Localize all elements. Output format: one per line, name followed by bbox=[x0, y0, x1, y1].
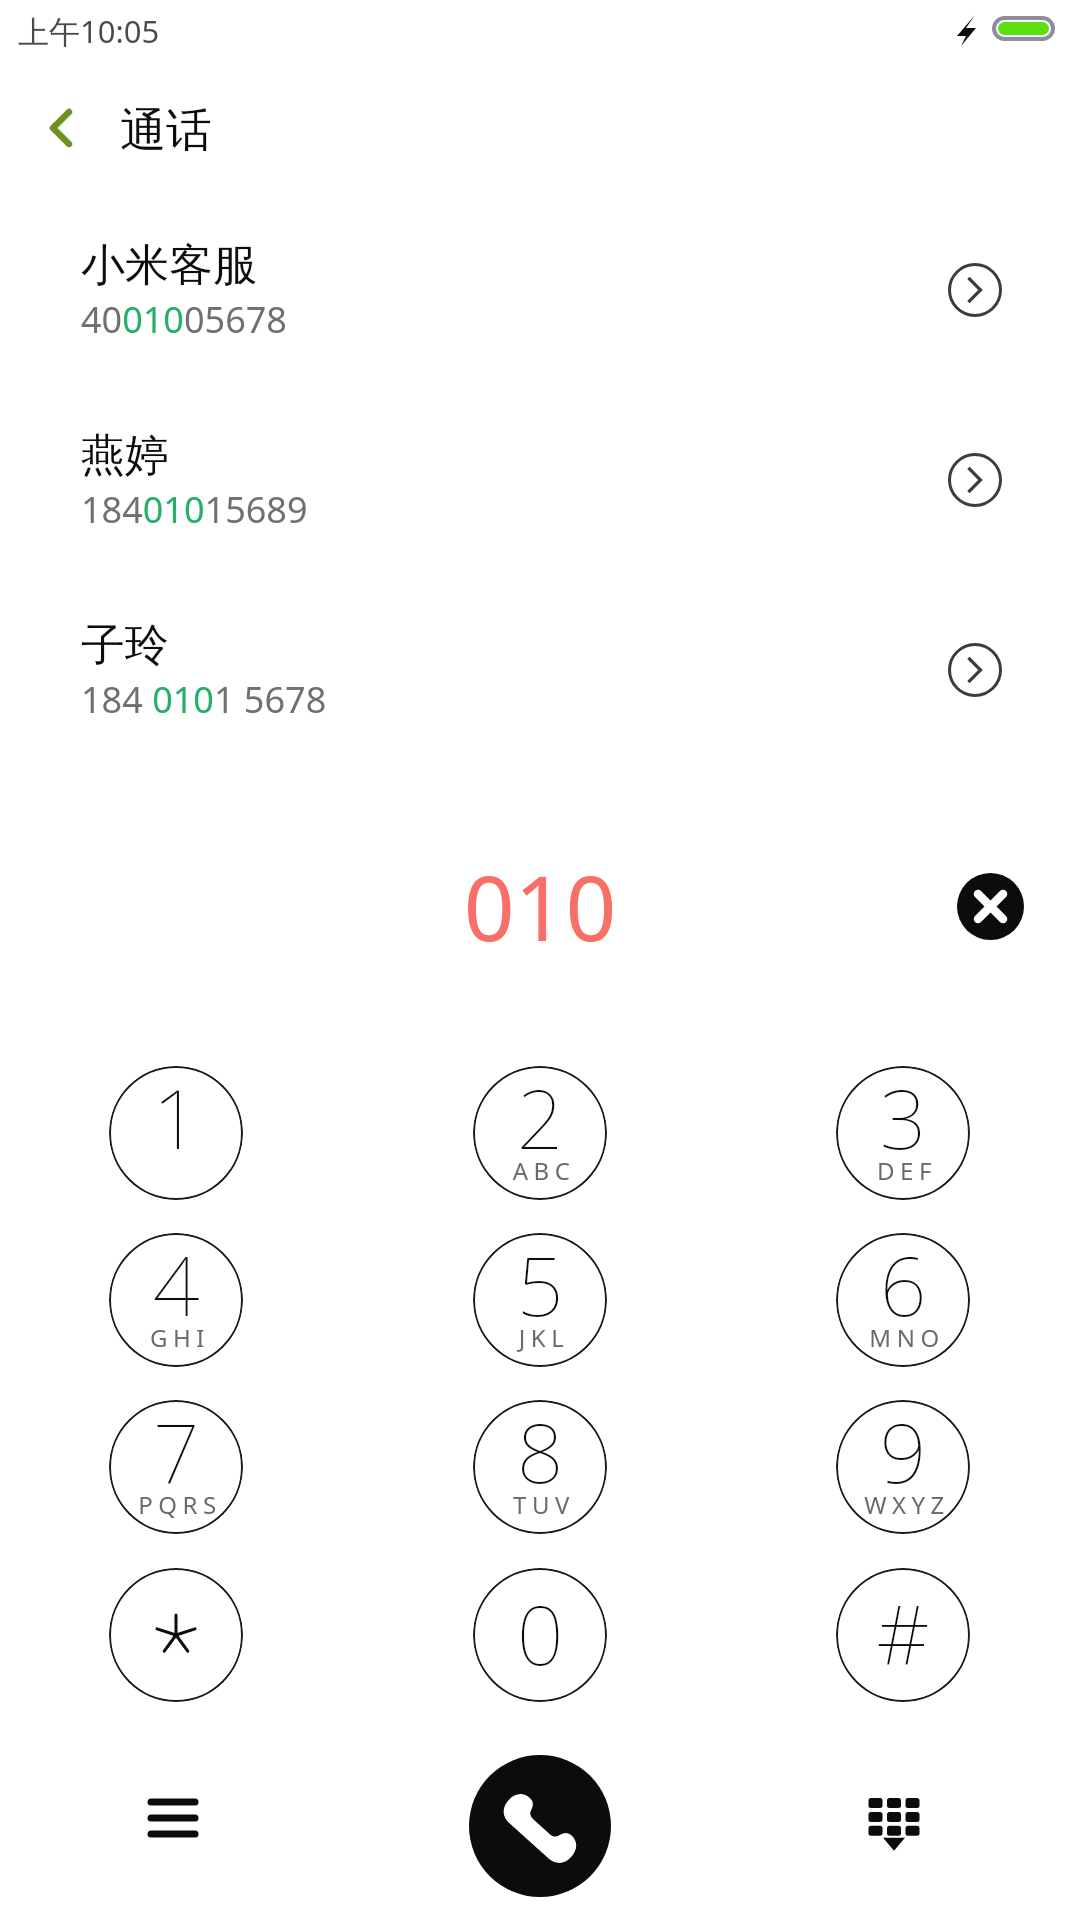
button[interactable]: Dial 0 bbox=[473, 1568, 607, 1702]
staticText: 4 bbox=[109, 1233, 243, 1340]
staticText: 通话 bbox=[120, 102, 212, 160]
button[interactable]: Call log bbox=[113, 1758, 233, 1878]
button[interactable]: Dialpad bbox=[834, 1760, 954, 1880]
staticText: 3 bbox=[836, 1066, 970, 1173]
staticText: 上午10:05 bbox=[18, 10, 160, 52]
staticText: 子玲 bbox=[81, 618, 169, 673]
staticText: ABC bbox=[477, 1154, 607, 1187]
button[interactable]: Open contact bbox=[948, 453, 1002, 507]
staticText: # bbox=[836, 1577, 970, 1689]
staticText: 1 bbox=[109, 1066, 243, 1173]
button[interactable]: Open contact bbox=[948, 263, 1002, 317]
button[interactable]: Clear bbox=[957, 873, 1024, 940]
button[interactable]: 子玲 bbox=[0, 595, 1080, 755]
button[interactable]: Dial 4 bbox=[109, 1233, 243, 1367]
staticText: TUV bbox=[477, 1488, 607, 1521]
button[interactable]: Dial 9 bbox=[836, 1400, 970, 1534]
staticText: 2 bbox=[473, 1066, 607, 1173]
staticText: 010 bbox=[0, 846, 1080, 967]
staticText: 6 bbox=[836, 1233, 970, 1340]
staticText: 0 bbox=[473, 1577, 607, 1689]
staticText: 9 bbox=[836, 1400, 970, 1507]
staticText: WXYZ bbox=[840, 1488, 970, 1521]
button[interactable]: Dial 7 bbox=[109, 1400, 243, 1534]
button[interactable]: Call bbox=[469, 1755, 611, 1897]
button[interactable]: Dial 8 bbox=[473, 1400, 607, 1534]
button[interactable]: Dial 6 bbox=[836, 1233, 970, 1367]
staticText: 4001005678 bbox=[81, 295, 287, 344]
button[interactable]: Dial 3 bbox=[836, 1066, 970, 1200]
button[interactable]: Dial 1 bbox=[109, 1066, 243, 1200]
button[interactable]: Dial 2 bbox=[473, 1066, 607, 1200]
staticText: 7 bbox=[109, 1400, 243, 1507]
staticText: 燕婷 bbox=[81, 428, 169, 483]
staticText: JKL bbox=[477, 1321, 607, 1354]
button[interactable]: Dial * bbox=[109, 1568, 243, 1702]
staticText: DEF bbox=[840, 1154, 970, 1187]
button[interactable]: Dial # bbox=[836, 1568, 970, 1702]
staticText: 18401015689 bbox=[81, 485, 308, 534]
staticText: 小米客服 bbox=[81, 238, 257, 293]
button[interactable]: 小米客服 bbox=[0, 215, 1080, 375]
staticText: 5 bbox=[473, 1233, 607, 1340]
staticText: MNO bbox=[840, 1321, 970, 1354]
button[interactable]: Back bbox=[21, 88, 101, 168]
button[interactable]: 燕婷 bbox=[0, 405, 1080, 565]
button[interactable]: Dial 5 bbox=[473, 1233, 607, 1367]
staticText: GHI bbox=[113, 1321, 243, 1354]
staticText: 184 0101 5678 bbox=[81, 675, 327, 724]
staticText: 8 bbox=[473, 1400, 607, 1507]
button[interactable]: Open contact bbox=[948, 643, 1002, 697]
staticText: PQRS bbox=[113, 1488, 243, 1521]
